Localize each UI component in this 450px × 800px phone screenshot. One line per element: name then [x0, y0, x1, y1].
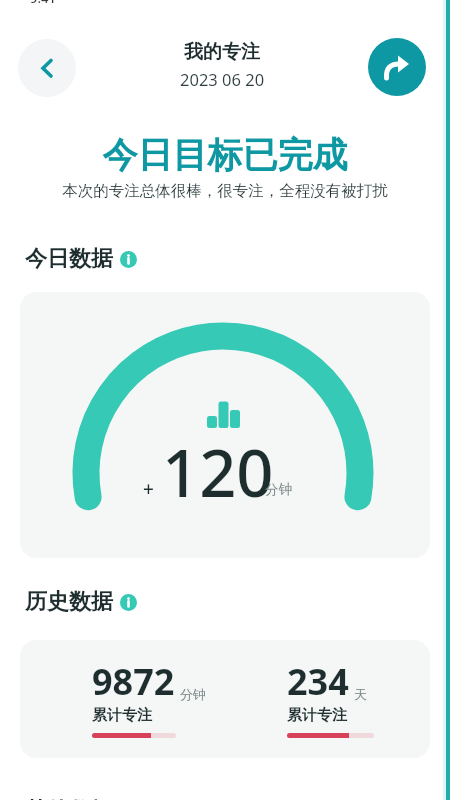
staticText: 本次的专注总体很棒，很专注，全程没有被打扰: [0, 181, 450, 201]
staticText: 我的专注: [184, 40, 260, 64]
staticText: 分钟: [265, 481, 292, 498]
staticText: 其他数据: [25, 797, 113, 800]
staticText: 今日目标已完成: [0, 133, 450, 177]
staticText: 累计专注: [92, 706, 152, 725]
button[interactable]: [18, 39, 76, 97]
staticText: 累计专注: [287, 706, 347, 725]
staticText: 120: [162, 428, 274, 517]
staticText: 历史数据: [25, 588, 113, 616]
staticText: 9:41: [30, 0, 56, 7]
staticText: 234: [287, 657, 349, 706]
staticText: 今日数据: [25, 245, 113, 273]
staticText: 天: [354, 686, 367, 702]
staticText: 9872: [92, 657, 175, 706]
staticText: 2023 06 20: [180, 68, 265, 90]
staticText: +: [143, 476, 154, 502]
staticText: 分钟: [180, 686, 206, 702]
button[interactable]: [368, 38, 426, 96]
